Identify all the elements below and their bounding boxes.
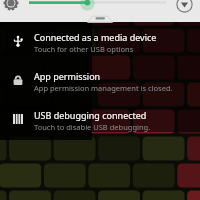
button[interactable]: Settings [3,0,19,11]
staticText: Touch to disable USB debugging. [34,122,151,132]
button[interactable]: App permission [0,61,200,100]
staticText: App permission management is closed. [34,83,173,93]
button[interactable]: USB debugging connected [0,100,200,139]
staticText: Connected as a media device [34,31,157,43]
staticText: USB debugging connected [34,109,147,121]
button[interactable]: Expand quick settings [176,0,193,13]
staticText: Touch for other USB options [34,44,134,54]
staticText: App permission [34,70,101,82]
button[interactable]: Connected as a media device [0,22,200,61]
